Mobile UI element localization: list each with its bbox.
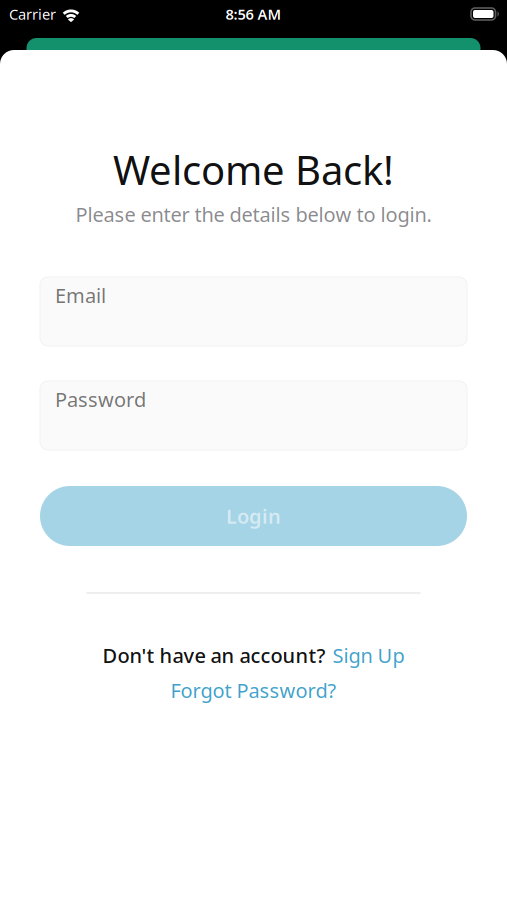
staticText: Carrier <box>9 4 56 24</box>
staticText: 8:56 AM <box>225 4 281 24</box>
button[interactable]: Email <box>40 277 467 346</box>
staticText: Please enter the details below to login. <box>75 201 431 228</box>
staticText: Email <box>55 282 106 309</box>
button[interactable]: Password <box>40 381 467 450</box>
staticText: Don't have an account? <box>102 642 325 669</box>
button[interactable]: Sign Up <box>332 642 404 669</box>
staticText: Forgot Password? <box>170 677 336 704</box>
button[interactable]: Login <box>40 486 467 546</box>
staticText: Welcome Back! <box>113 143 394 196</box>
staticText: Password <box>55 386 146 413</box>
button[interactable]: Forgot Password? <box>170 677 336 704</box>
staticText: Sign Up <box>332 642 404 669</box>
staticText: Login <box>226 503 281 529</box>
